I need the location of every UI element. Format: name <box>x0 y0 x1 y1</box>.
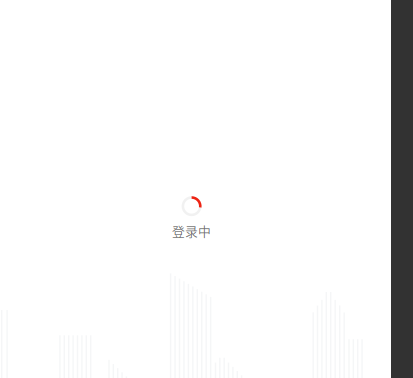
staticText: 登录中 <box>172 221 211 240</box>
